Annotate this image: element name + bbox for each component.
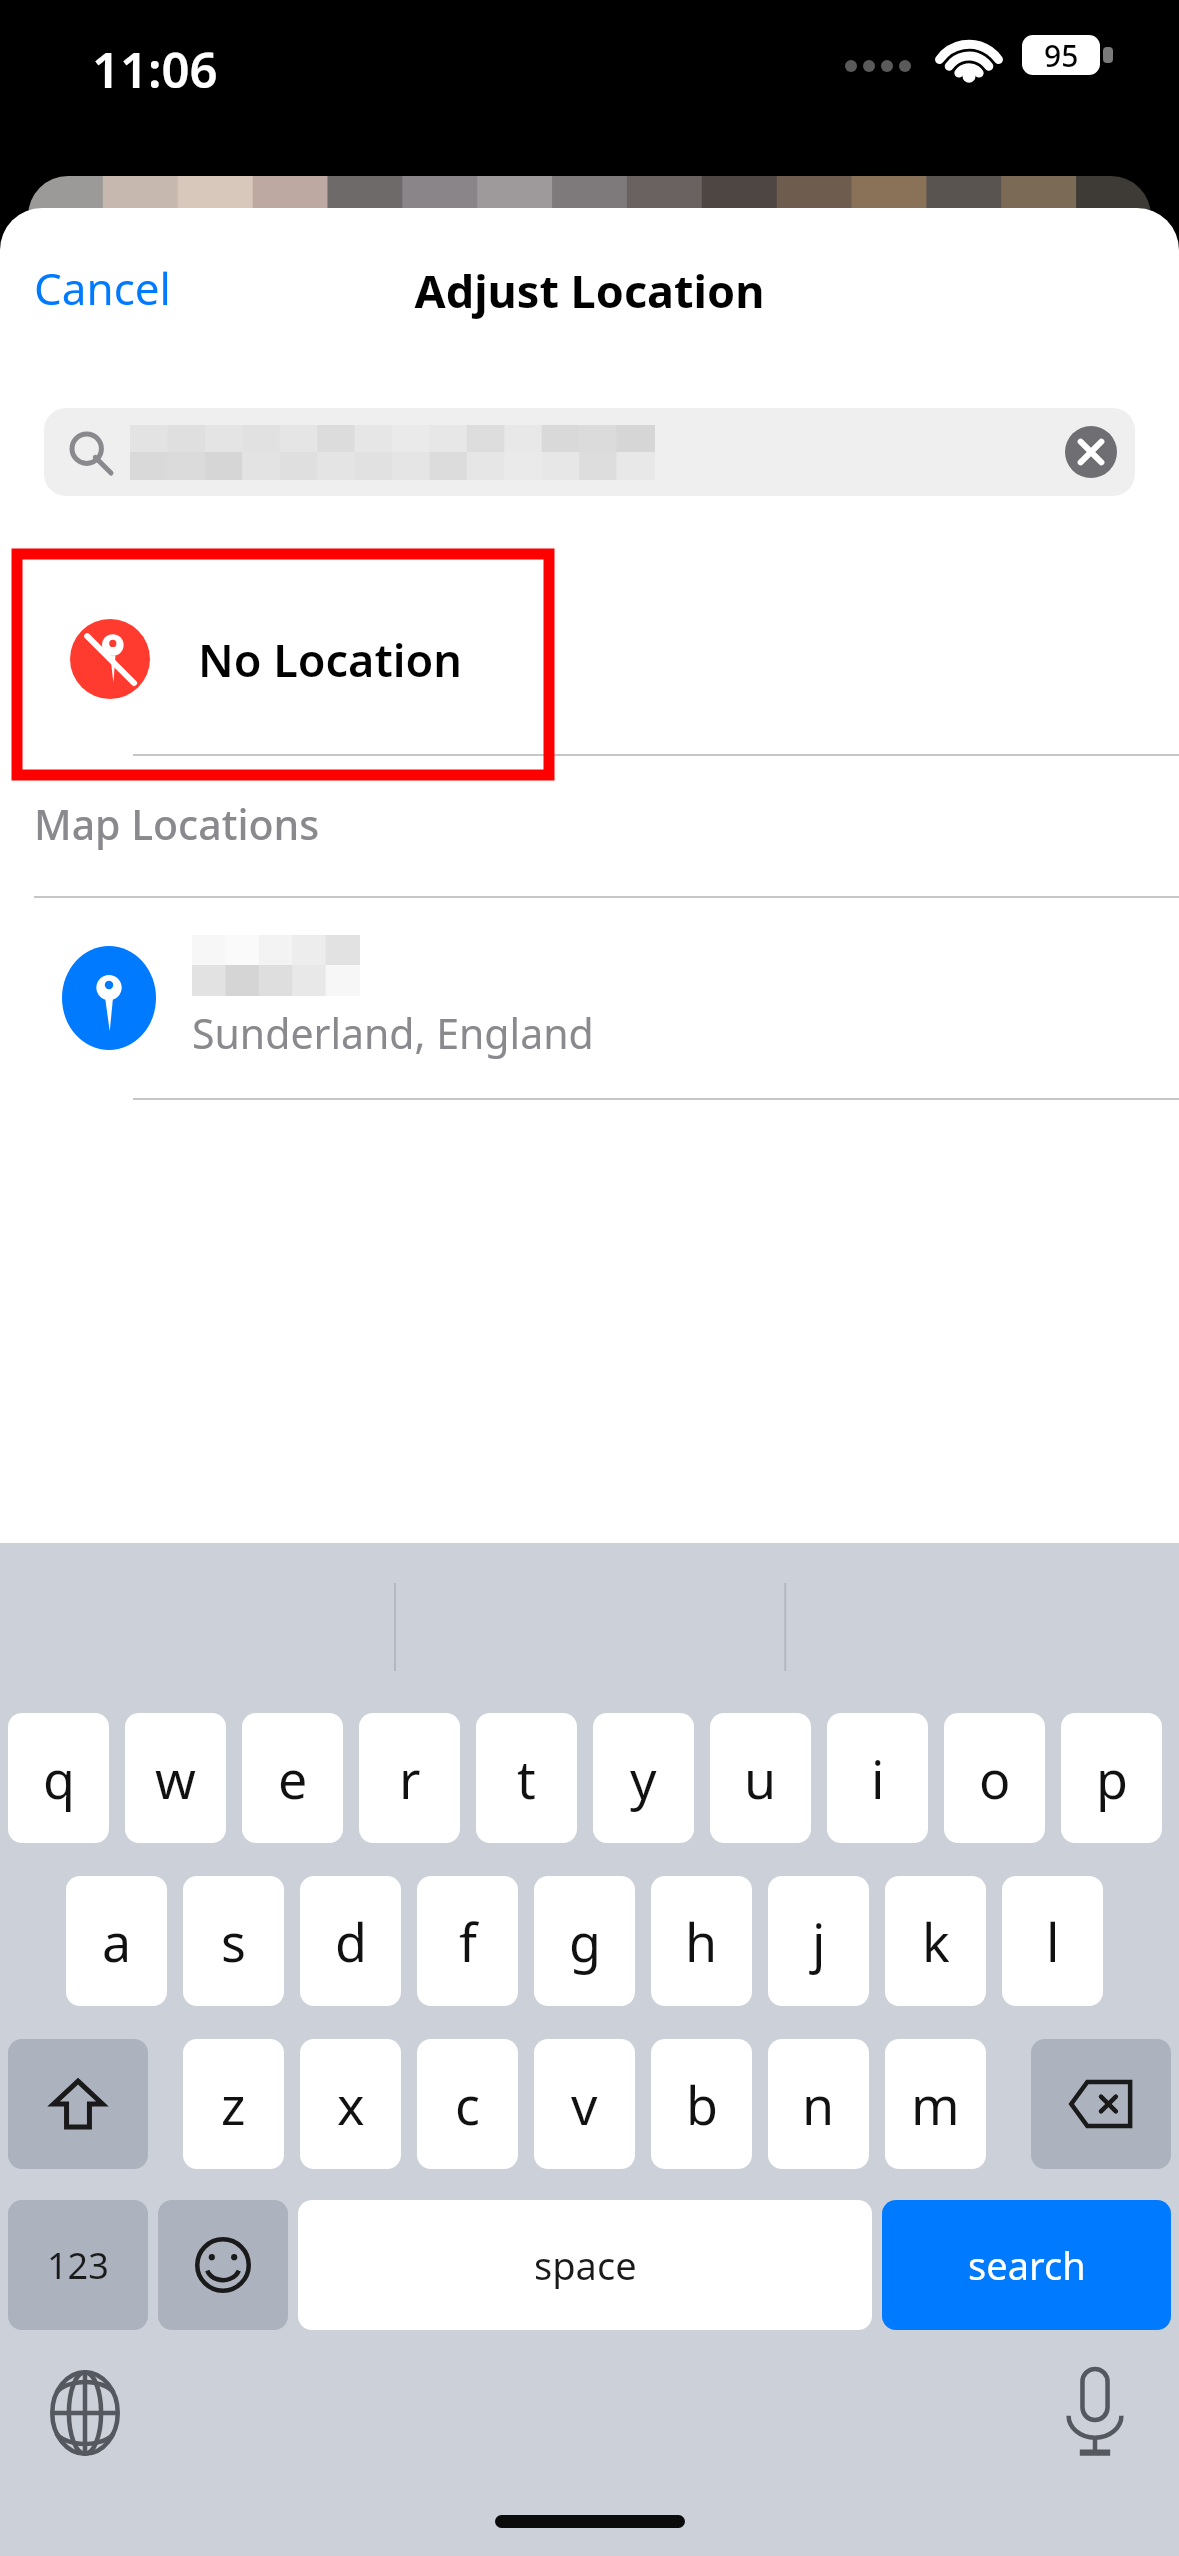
button[interactable]: u <box>710 1713 811 1843</box>
staticText: Adjust Location <box>0 260 1179 321</box>
staticText: Map Locations <box>34 796 320 852</box>
staticText: v <box>571 2069 598 2140</box>
staticText: d <box>335 1906 367 1977</box>
button[interactable]: y <box>593 1713 694 1843</box>
button[interactable]: z <box>183 2039 284 2169</box>
staticText: No Location <box>198 629 462 690</box>
button[interactable]: Backspace <box>1031 2039 1171 2169</box>
button[interactable]: space <box>298 2200 872 2330</box>
staticText: y <box>630 1743 657 1814</box>
button[interactable]: Cancel <box>18 246 187 330</box>
button[interactable]: n <box>768 2039 869 2169</box>
staticText: c <box>455 2069 480 2140</box>
button[interactable]: f <box>417 1876 518 2006</box>
button[interactable]: l <box>1002 1876 1103 2006</box>
button[interactable]: Numbers <box>8 2200 148 2330</box>
button[interactable]: c <box>417 2039 518 2169</box>
staticText: Cancel <box>34 258 171 318</box>
staticText: u <box>744 1743 777 1814</box>
button[interactable]: search <box>882 2200 1171 2330</box>
staticText: n <box>802 2069 835 2140</box>
button[interactable]: i <box>827 1713 928 1843</box>
button[interactable]: g <box>534 1876 635 2006</box>
button[interactable]: r <box>359 1713 460 1843</box>
staticText: h <box>685 1906 718 1977</box>
staticText: z <box>221 2069 246 2140</box>
staticText: 11:06 <box>92 36 218 103</box>
button[interactable]: m <box>885 2039 986 2169</box>
button[interactable]: s <box>183 1876 284 2006</box>
button[interactable]: Clear search <box>1065 426 1117 478</box>
button[interactable]: d <box>300 1876 401 2006</box>
staticText: a <box>102 1906 132 1977</box>
staticText: l <box>1046 1906 1060 1977</box>
button[interactable]: q <box>8 1713 109 1843</box>
button[interactable]: Change keyboard <box>30 2358 140 2468</box>
staticText: space <box>534 2239 637 2291</box>
button[interactable]: x <box>300 2039 401 2169</box>
button[interactable]: t <box>476 1713 577 1843</box>
button[interactable]: Clear search <box>44 408 1135 496</box>
staticText: i <box>871 1743 885 1814</box>
staticText: m <box>911 2069 960 2140</box>
button[interactable]: No Location <box>0 564 1179 754</box>
button[interactable]: Emoji <box>158 2200 288 2330</box>
button[interactable]: o <box>944 1713 1045 1843</box>
button[interactable]: Shift <box>8 2039 148 2169</box>
staticText: x <box>337 2069 365 2140</box>
button[interactable]: p <box>1061 1713 1162 1843</box>
staticText: 123 <box>47 2241 109 2290</box>
button[interactable]: e <box>242 1713 343 1843</box>
staticText: f <box>459 1906 477 1977</box>
button[interactable]: a <box>66 1876 167 2006</box>
button[interactable]: w <box>125 1713 226 1843</box>
staticText: w <box>155 1743 196 1814</box>
button[interactable]: v <box>534 2039 635 2169</box>
staticText: q <box>43 1743 75 1814</box>
button[interactable]: j <box>768 1876 869 2006</box>
button[interactable]: b <box>651 2039 752 2169</box>
staticText: e <box>278 1743 308 1814</box>
staticText: search <box>968 2239 1086 2291</box>
staticText: 95 <box>1044 35 1079 75</box>
staticText: b <box>686 2069 718 2140</box>
staticText: p <box>1096 1743 1128 1814</box>
staticText: t <box>517 1743 536 1814</box>
staticText: Sunderland, England <box>192 1005 594 1061</box>
staticText: k <box>922 1906 950 1977</box>
button[interactable]: Dictate <box>1040 2358 1150 2468</box>
staticText: g <box>569 1906 601 1977</box>
staticText: s <box>221 1906 246 1977</box>
staticText: o <box>979 1743 1011 1814</box>
button[interactable]: h <box>651 1876 752 2006</box>
staticText: r <box>399 1743 421 1814</box>
staticText: j <box>812 1906 826 1977</box>
button[interactable]: Sunderland, England <box>0 898 1179 1098</box>
button[interactable]: k <box>885 1876 986 2006</box>
